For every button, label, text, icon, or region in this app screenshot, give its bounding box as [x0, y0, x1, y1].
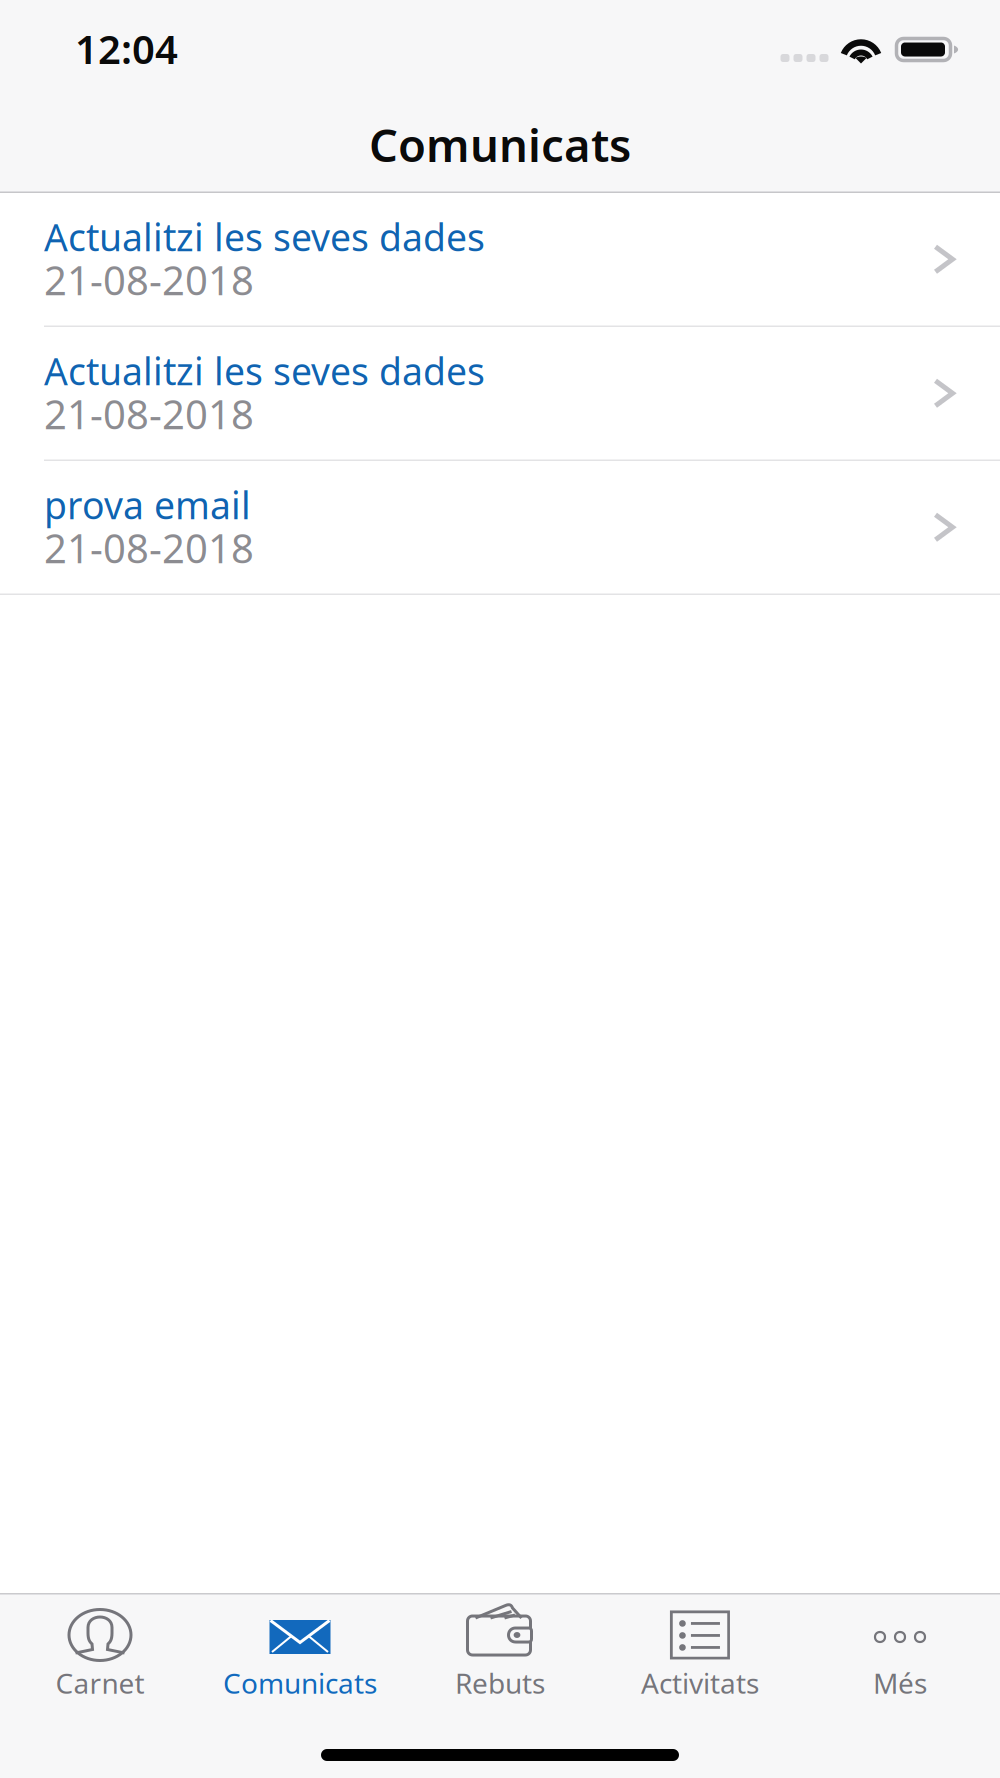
- staticText: Carnet: [55, 1664, 144, 1702]
- button[interactable]: Més: [800, 1593, 1000, 1708]
- button[interactable]: Actualitzi les seves dades: [0, 193, 1000, 327]
- button[interactable]: Activitats: [600, 1593, 800, 1708]
- staticText: prova email: [44, 480, 251, 530]
- button[interactable]: prova email: [0, 461, 1000, 595]
- staticText: 12:04: [75, 22, 178, 75]
- staticText: Activitats: [641, 1664, 759, 1702]
- button[interactable]: Carnet: [0, 1593, 200, 1708]
- staticText: Més: [873, 1664, 927, 1702]
- staticText: Rebuts: [455, 1664, 545, 1702]
- staticText: Comunicats: [369, 114, 631, 175]
- staticText: 21-08-2018: [44, 387, 254, 440]
- staticText: Actualitzi les seves dades: [44, 212, 485, 262]
- button[interactable]: Actualitzi les seves dades: [0, 327, 1000, 461]
- staticText: 21-08-2018: [44, 253, 254, 306]
- staticText: Actualitzi les seves dades: [44, 346, 485, 396]
- staticText: 21-08-2018: [44, 521, 254, 574]
- staticText: Comunicats: [223, 1664, 377, 1702]
- button[interactable]: Rebuts: [400, 1593, 600, 1708]
- button[interactable]: Comunicats: [200, 1593, 400, 1708]
